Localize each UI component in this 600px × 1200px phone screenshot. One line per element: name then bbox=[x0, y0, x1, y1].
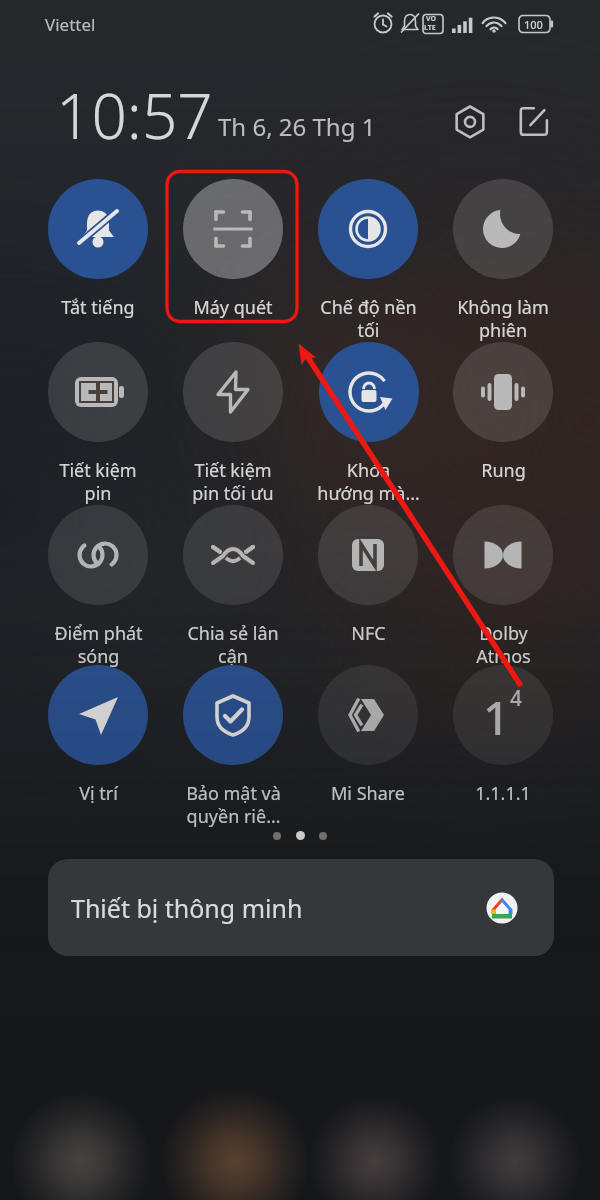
staticText: Tiết kiệm pin tối ưu bbox=[192, 458, 274, 505]
button[interactable]: Vị trí bbox=[31, 665, 165, 833]
staticText: Chế độ nền tối bbox=[320, 295, 417, 342]
button[interactable]: NFC bbox=[301, 505, 435, 673]
button[interactable]: 1 bbox=[436, 665, 570, 833]
button[interactable]: Mi Share bbox=[301, 665, 435, 833]
button[interactable]: Điểm phát sóng bbox=[31, 505, 165, 673]
button[interactable]: Tiết kiệm pin bbox=[31, 342, 165, 510]
button[interactable]: Tắt tiếng bbox=[31, 179, 165, 347]
staticText: Thiết bị thông minh bbox=[71, 891, 303, 925]
button[interactable]: Chế độ nền tối bbox=[301, 179, 435, 347]
staticText: Tiết kiệm pin bbox=[59, 458, 137, 505]
staticText: Rung bbox=[481, 458, 526, 483]
staticText: Bảo mật và quyền riê… bbox=[186, 781, 281, 828]
button[interactable]: Tiết kiệm pin tối ưu bbox=[166, 342, 300, 510]
button[interactable]: Máy quét bbox=[166, 179, 300, 347]
button[interactable]: Không làm phiên bbox=[436, 179, 570, 347]
button[interactable]: Edit bbox=[511, 99, 556, 144]
staticText: Vị trí bbox=[79, 781, 118, 806]
button[interactable]: Rung bbox=[436, 342, 570, 510]
staticText: Chia sẻ lân cận bbox=[187, 621, 279, 668]
staticText: 1.1.1.1 bbox=[475, 781, 531, 806]
staticText: Máy quét bbox=[193, 295, 273, 320]
button[interactable]: Bảo mật và quyền riê… bbox=[166, 665, 300, 833]
staticText: 1 bbox=[483, 686, 510, 749]
staticText: Viettel bbox=[45, 13, 96, 36]
staticText: LTE bbox=[424, 23, 436, 33]
staticText: Tắt tiếng bbox=[61, 295, 135, 320]
staticText: NFC bbox=[351, 621, 386, 646]
staticText: Th 6, 26 Thg 1 bbox=[218, 110, 376, 143]
button[interactable]: Chia sẻ lân cận bbox=[166, 505, 300, 673]
button[interactable]: Khóa hướng mà… bbox=[301, 342, 435, 510]
staticText: Khóa hướng mà… bbox=[317, 458, 420, 505]
staticText: 4 bbox=[510, 684, 523, 713]
staticText: Không làm phiên bbox=[457, 295, 549, 342]
staticText: VO bbox=[426, 14, 437, 24]
staticText: 10:57 bbox=[56, 73, 213, 157]
staticText: 100 bbox=[524, 17, 543, 32]
staticText: Điểm phát sóng bbox=[54, 621, 143, 668]
button[interactable]: Thiết bị thông minh bbox=[48, 859, 554, 956]
button[interactable]: Settings bbox=[447, 99, 492, 144]
staticText: Mi Share bbox=[331, 781, 405, 806]
staticText: Dolby Atmos bbox=[476, 621, 531, 668]
button[interactable]: Dolby Atmos bbox=[436, 505, 570, 673]
